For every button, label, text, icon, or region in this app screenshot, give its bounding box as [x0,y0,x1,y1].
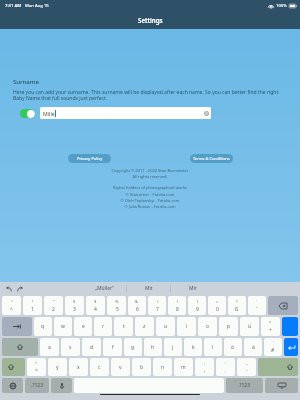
button[interactable]: Switch language [2,378,23,393]
staticText: - [246,367,248,374]
button[interactable]: s [61,338,80,356]
button[interactable]: i [177,317,196,336]
button[interactable]: ( [168,296,186,315]
button[interactable]: Shift [258,358,298,376]
button[interactable]: Caps lock [2,338,38,356]
button[interactable]: Delete [268,296,298,315]
button[interactable]: h [144,338,162,356]
staticText: j [172,344,174,351]
button[interactable]: r [94,317,112,336]
staticText: 6 [136,306,139,313]
other: Switch language [10,383,16,389]
staticText: a [48,344,51,351]
button[interactable]: Mille [40,107,211,119]
button[interactable]: d [82,338,101,356]
other: Delete [279,303,287,309]
button[interactable]: .?123 [226,378,263,393]
button[interactable]: u [156,317,175,336]
button[interactable]: c [90,358,109,376]
button[interactable]: " [44,296,63,315]
staticText: r [102,323,105,330]
staticText: % [115,299,119,305]
button[interactable]: ` [248,296,266,315]
button[interactable]: Tab [2,317,32,336]
button[interactable]: _ [237,358,256,376]
button[interactable]: ü [240,317,259,336]
button[interactable]: n [153,358,172,376]
button[interactable]: ä [244,338,262,356]
staticText: b [140,364,144,371]
staticText: 1 [31,306,34,313]
staticText: y [56,364,59,371]
staticText: c [98,364,101,371]
button[interactable]: > [27,358,46,376]
button[interactable]: & [128,296,146,315]
button[interactable]: x [69,358,88,376]
staticText: 9 [196,306,199,313]
button[interactable]: ! [23,296,42,315]
staticText: > [35,360,38,366]
button[interactable]: q [34,317,52,336]
staticText: + [269,327,272,334]
button[interactable]: v [111,358,130,376]
staticText: ü [248,323,252,330]
button[interactable]: Mir [171,282,214,295]
button[interactable]: = [208,296,226,315]
button[interactable]: : [216,358,235,376]
button[interactable]: Undo [6,286,12,292]
staticText: Copyright © 2011 - 2022 Stan Burmeister [0,168,300,173]
button[interactable]: * [261,317,280,336]
button[interactable]: Mit [127,282,170,295]
button[interactable]: Hide keyboard [265,378,298,393]
button[interactable]: Toggle surname [20,109,35,118]
staticText: ß [235,306,239,313]
staticText: z [143,323,146,330]
button[interactable]: Redo [17,286,23,292]
other: Hide keyboard [278,383,286,389]
button[interactable]: l [204,338,222,356]
button[interactable]: Terms & Conditions [190,154,233,163]
button[interactable]: ) [188,296,206,315]
other: Return [288,345,295,350]
button[interactable]: w [54,317,72,336]
button[interactable]: Dictate [51,378,72,393]
staticText: Settings [138,16,163,24]
button[interactable]: $ [86,296,105,315]
button[interactable]: ? [228,296,246,315]
staticText: ( [177,299,179,305]
button[interactable]: „Müller" [84,282,126,295]
button[interactable]: m [174,358,193,376]
staticText: . [225,367,227,374]
button[interactable]: § [65,296,84,315]
button[interactable] [282,317,298,336]
button[interactable]: t [114,317,133,336]
button[interactable]: ° [2,296,21,315]
button[interactable]: ; [195,358,214,376]
button[interactable]: y [48,358,67,376]
staticText: * [269,320,272,326]
button[interactable]: k [184,338,202,356]
button[interactable]: .?123 [25,378,49,393]
staticText: f [112,344,114,351]
staticText: ; [204,360,206,366]
button[interactable]: j [164,338,182,356]
staticText: 2 [52,306,55,313]
button[interactable]: z [135,317,154,336]
button[interactable]: ö [224,338,242,356]
button[interactable]: b [132,358,151,376]
button[interactable]: p [219,317,238,336]
button[interactable]: % [107,296,126,315]
button[interactable]: o [198,317,217,336]
button[interactable]: Return [284,338,298,356]
button[interactable]: Shift [2,358,25,376]
staticText: 7 [156,306,159,313]
button[interactable]: ' [264,338,282,356]
button[interactable]: g [124,338,142,356]
button[interactable]: / [148,296,166,315]
button[interactable]: e [74,317,92,336]
button[interactable]: f [103,338,122,356]
button[interactable]: Privacy Policy [68,154,111,163]
staticText: _ [246,360,248,366]
button[interactable]: a [40,338,59,356]
